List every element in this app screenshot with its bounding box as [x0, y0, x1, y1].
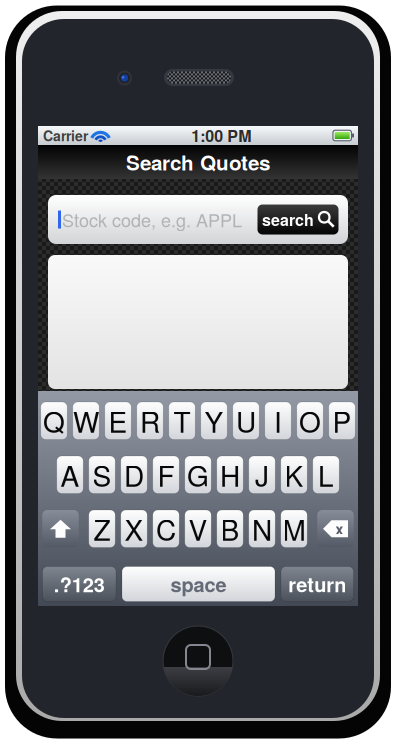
- button[interactable]: O: [297, 402, 323, 439]
- button[interactable]: F: [153, 456, 179, 493]
- staticText: T: [173, 401, 190, 441]
- button[interactable]: N: [249, 510, 275, 547]
- staticText: I: [274, 401, 282, 441]
- button[interactable]: Z: [89, 510, 115, 547]
- button[interactable]: W: [73, 402, 99, 439]
- button[interactable]: G: [185, 456, 211, 493]
- button[interactable]: Delete: [317, 510, 354, 547]
- button[interactable]: Q: [41, 402, 67, 439]
- button[interactable]: M: [281, 510, 307, 547]
- staticText: P: [332, 401, 351, 441]
- staticText: x: [335, 519, 343, 539]
- staticText: .?123: [54, 570, 105, 598]
- button[interactable]: X: [121, 510, 147, 547]
- staticText: 1:00 PM: [191, 124, 251, 147]
- button[interactable]: P: [329, 402, 355, 439]
- staticText: X: [124, 509, 143, 549]
- staticText: E: [108, 401, 127, 441]
- button[interactable]: K: [281, 456, 307, 493]
- staticText: search: [262, 208, 314, 231]
- staticText: Y: [204, 401, 223, 441]
- staticText: Z: [93, 509, 110, 549]
- staticText: R: [140, 401, 160, 441]
- button[interactable]: A: [57, 456, 83, 493]
- button[interactable]: Shift: [42, 510, 79, 547]
- button[interactable]: U: [233, 402, 259, 439]
- button[interactable]: V: [185, 510, 211, 547]
- staticText: Carrier: [43, 125, 88, 145]
- button[interactable]: D: [121, 456, 147, 493]
- button[interactable]: R: [137, 402, 163, 439]
- staticText: M: [282, 509, 305, 549]
- button[interactable]: search: [257, 204, 338, 234]
- staticText: H: [220, 455, 240, 495]
- button[interactable]: J: [249, 456, 275, 493]
- staticText: W: [73, 401, 99, 441]
- button[interactable]: Y: [201, 402, 227, 439]
- staticText: space: [170, 570, 226, 598]
- staticText: O: [299, 401, 321, 441]
- staticText: S: [92, 455, 111, 495]
- staticText: F: [157, 455, 174, 495]
- button[interactable]: B: [217, 510, 243, 547]
- button[interactable]: space: [122, 566, 275, 601]
- staticText: Q: [43, 401, 65, 441]
- button[interactable]: E: [105, 402, 131, 439]
- staticText: A: [60, 455, 79, 495]
- button[interactable]: .?123: [42, 566, 116, 601]
- staticText: C: [156, 509, 176, 549]
- button[interactable]: S: [89, 456, 115, 493]
- staticText: Stock code, e.g. APPL: [62, 207, 242, 232]
- staticText: Search Quotes: [126, 147, 270, 177]
- staticText: K: [284, 455, 303, 495]
- button[interactable]: H: [217, 456, 243, 493]
- staticText: L: [318, 455, 334, 495]
- button[interactable]: C: [153, 510, 179, 547]
- staticText: N: [252, 509, 272, 549]
- staticText: V: [188, 509, 207, 549]
- staticText: J: [255, 455, 269, 495]
- staticText: return: [288, 570, 346, 598]
- staticText: B: [220, 509, 239, 549]
- button[interactable]: L: [313, 456, 339, 493]
- staticText: U: [236, 401, 256, 441]
- button[interactable]: return: [281, 566, 353, 601]
- staticText: G: [187, 455, 209, 495]
- button[interactable]: I: [265, 402, 291, 439]
- button[interactable]: T: [169, 402, 195, 439]
- staticText: D: [124, 455, 144, 495]
